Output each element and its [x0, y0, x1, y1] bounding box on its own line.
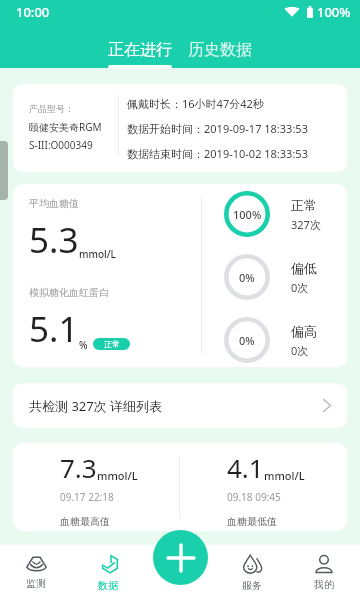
staticText: 09.18 09:45 [227, 490, 281, 504]
staticText: 数据 [98, 579, 118, 592]
staticText: 10:00 [16, 3, 50, 21]
staticText: 历史数据 [188, 40, 252, 60]
staticText: 正常 [291, 197, 317, 213]
button[interactable]: 数据 [72, 545, 144, 600]
staticText: 5.1 [29, 305, 79, 353]
staticText: 100% [317, 3, 351, 21]
staticText: 监测 [26, 577, 46, 590]
staticText: 正在进行 [108, 40, 172, 60]
staticText: 共检测 327次 详细列表 [29, 397, 163, 415]
staticText: 数据开始时间：2019-09-17 18:33:53 [127, 121, 308, 136]
staticText: 5.3 [29, 216, 79, 264]
staticText: mmol/L [97, 468, 138, 483]
staticText: 0% [239, 333, 255, 348]
staticText: mmol/L [264, 468, 305, 483]
staticText: 血糖最低值 [227, 515, 277, 528]
staticText: 偏高 [291, 323, 317, 339]
button[interactable]: 共检测 327次 详细列表 [13, 383, 347, 428]
button[interactable]: 我的 [288, 545, 360, 600]
staticText: 偏低 [291, 260, 317, 276]
button[interactable]: 正在进行 [104, 40, 176, 68]
staticText: 模拟糖化血红蛋白 [29, 286, 109, 299]
staticText: mmol/L [79, 247, 116, 261]
staticText: 产品型号： [29, 103, 74, 114]
staticText: 正常 [104, 339, 120, 349]
staticText: 7.3 [60, 450, 97, 485]
button[interactable]: Add [153, 530, 208, 585]
staticText: 100% [233, 207, 262, 222]
staticText: 数据结束时间：2019-10-02 18:33:53 [127, 146, 308, 161]
staticText: 佩戴时长：16小时47分42秒 [127, 96, 264, 111]
staticText: 服务 [242, 579, 262, 592]
staticText: 327次 [291, 217, 321, 232]
staticText: 血糖最高值 [60, 515, 110, 528]
button[interactable]: 历史数据 [184, 40, 256, 68]
staticText: 0次 [291, 343, 309, 358]
staticText: 0% [239, 270, 255, 285]
staticText: 平均血糖值 [29, 197, 79, 210]
staticText: 颐健安美奇RGM [29, 120, 113, 134]
staticText: 09.17 22:18 [60, 490, 114, 504]
button[interactable]: 服务 [216, 545, 288, 600]
staticText: 我的 [314, 578, 334, 591]
button[interactable]: 监测 [0, 545, 72, 600]
staticText: S-III:O000349 [29, 138, 93, 152]
staticText: % [79, 338, 88, 352]
button[interactable]: Open drawer [0, 141, 8, 200]
staticText: 0次 [291, 280, 309, 295]
staticText: 4.1 [227, 450, 264, 485]
